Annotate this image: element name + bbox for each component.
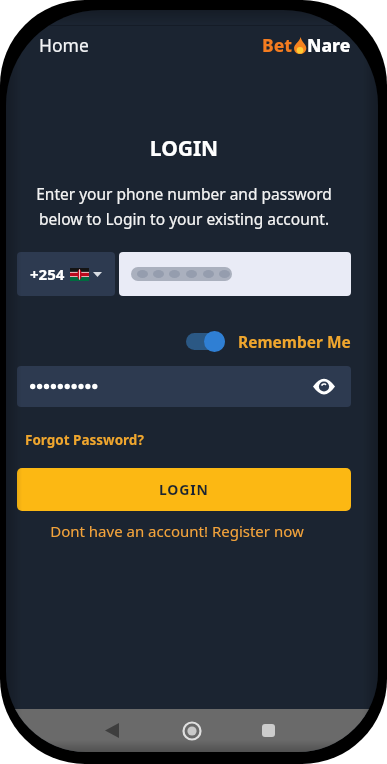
button[interactable] bbox=[186, 330, 225, 352]
button[interactable]: Forgot Password? bbox=[25, 431, 144, 449]
staticText: Nare bbox=[307, 33, 351, 57]
staticText: LOGIN bbox=[17, 134, 351, 163]
button[interactable] bbox=[119, 252, 351, 296]
button[interactable]: Bet bbox=[262, 33, 351, 57]
staticText: +254 bbox=[30, 264, 65, 284]
button[interactable] bbox=[168, 709, 216, 752]
button[interactable] bbox=[244, 709, 292, 752]
button[interactable] bbox=[88, 709, 136, 752]
button[interactable] bbox=[17, 366, 351, 407]
staticText: LOGIN bbox=[159, 480, 209, 499]
staticText: Remember Me bbox=[238, 331, 351, 352]
staticText: Bet bbox=[262, 33, 293, 57]
button[interactable]: +254 bbox=[17, 252, 115, 296]
button[interactable]: Home bbox=[39, 33, 89, 57]
staticText: Enter your phone number and password bel… bbox=[17, 183, 351, 229]
button[interactable]: Dont have an account! Register now bbox=[10, 521, 344, 541]
button[interactable]: LOGIN bbox=[17, 468, 351, 511]
